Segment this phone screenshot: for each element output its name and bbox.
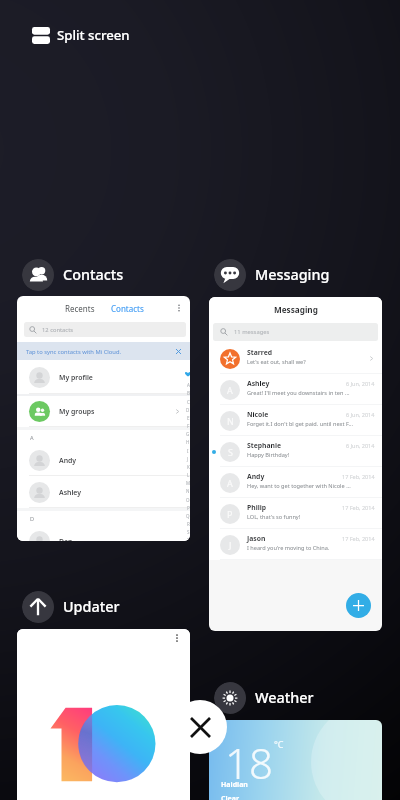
staticText: My groups <box>59 407 174 416</box>
staticText: 6 Jun, 2014 <box>346 442 375 449</box>
staticText: Q <box>186 513 190 519</box>
button[interactable]: 11 messages <box>213 323 378 341</box>
button[interactable]: More options <box>172 301 186 315</box>
staticText: I <box>187 448 189 454</box>
staticText: J <box>187 456 189 462</box>
staticText: Weather <box>255 688 314 708</box>
staticText: A <box>227 477 233 489</box>
staticText: O <box>186 497 190 503</box>
staticText: F <box>187 423 190 429</box>
staticText: LOL, that's so funny! <box>247 513 301 521</box>
staticText: 17 Feb, 2014 <box>342 535 375 542</box>
button[interactable]: N <box>209 405 382 436</box>
staticText: Let's eat out, shall we? <box>247 358 306 366</box>
staticText: Clear <box>221 794 240 800</box>
button[interactable]: P <box>209 498 382 529</box>
staticText: R <box>187 521 190 527</box>
staticText: Tap to sync contacts with Mi Cloud. <box>26 348 122 356</box>
staticText: Andy <box>247 472 265 481</box>
button[interactable]: 18 <box>209 720 382 800</box>
button[interactable]: More options <box>17 629 190 800</box>
button[interactable]: New message <box>346 593 371 618</box>
staticText: N <box>186 488 190 494</box>
staticText: Stephanie <box>247 441 282 450</box>
staticText: P <box>187 505 190 511</box>
staticText: Dan <box>59 537 181 541</box>
staticText: Ashley <box>59 488 181 497</box>
staticText: E <box>187 415 190 421</box>
staticText: 11 messages <box>234 328 270 336</box>
staticText: Recents <box>65 303 95 314</box>
staticText: Starred <box>247 348 273 357</box>
staticText: L <box>187 472 190 478</box>
button[interactable]: More options <box>170 631 184 645</box>
button[interactable]: 12 contacts <box>24 322 186 337</box>
staticText: H <box>186 439 190 445</box>
staticText: C <box>187 399 190 405</box>
staticText: M <box>186 480 190 486</box>
staticText: A <box>187 382 190 388</box>
staticText: 17 Feb, 2014 <box>342 473 375 480</box>
staticText: Messaging <box>255 265 330 285</box>
button[interactable]: Close all apps <box>173 700 227 754</box>
staticText: °C <box>274 738 284 750</box>
button[interactable]: S <box>209 436 382 467</box>
staticText: Contacts <box>63 265 124 285</box>
button[interactable]: Messaging <box>214 259 330 291</box>
staticText: Nicole <box>247 410 269 419</box>
staticText: My profile <box>59 373 181 382</box>
staticText: Haidian <box>221 780 248 790</box>
staticText: 12 contacts <box>42 326 74 334</box>
button[interactable]: Dan <box>17 526 190 541</box>
button[interactable]: My groups <box>17 396 190 427</box>
button[interactable]: Andy <box>17 445 190 476</box>
staticText: Happy Birthday! <box>247 451 290 459</box>
button[interactable]: Contacts <box>22 259 124 291</box>
staticText: Jason <box>247 534 266 543</box>
staticText: Split screen <box>57 26 130 44</box>
button[interactable]: My profile <box>17 360 190 394</box>
button[interactable]: Dismiss <box>173 346 184 357</box>
button[interactable]: A <box>209 467 382 498</box>
button[interactable]: Split screen <box>26 21 136 49</box>
button[interactable]: A <box>209 374 382 405</box>
staticText: K <box>187 464 190 470</box>
button[interactable]: Starred <box>209 343 382 374</box>
staticText: A <box>227 384 233 396</box>
staticText: I heard you're moving to China. <box>247 544 330 552</box>
staticText: Forget it.I don't bl get paid. until nex… <box>247 420 353 428</box>
staticText: 6 Jun, 2014 <box>346 380 375 387</box>
staticText: D <box>186 407 190 413</box>
staticText: Great! I'll meet you downstairs in ten .… <box>247 389 350 397</box>
staticText: D <box>30 515 35 523</box>
staticText: Updater <box>63 597 120 617</box>
button[interactable]: J <box>209 529 382 560</box>
button[interactable]: Recents <box>17 296 190 541</box>
staticText: N <box>227 415 234 427</box>
staticText: Contacts <box>111 303 144 314</box>
staticText: 18 <box>225 734 273 791</box>
staticText: B <box>187 390 190 396</box>
staticText: T <box>187 537 190 541</box>
staticText: J <box>229 539 232 551</box>
staticText: A <box>30 434 34 442</box>
staticText: Philip <box>247 503 267 512</box>
staticText: Andy <box>59 456 181 465</box>
button[interactable]: Ashley <box>17 476 190 508</box>
staticText: S <box>228 446 233 458</box>
staticText: 17 Feb, 2014 <box>342 504 375 511</box>
staticText: Hey, want to get together with Nicole ..… <box>247 482 351 490</box>
button[interactable]: Updater <box>22 591 120 623</box>
button[interactable]: Tap to sync contacts with Mi Cloud. <box>17 342 190 361</box>
staticText: 6 Jun, 2014 <box>346 411 375 418</box>
button[interactable]: Messaging <box>209 297 382 631</box>
staticText: S <box>187 529 190 535</box>
button[interactable]: Weather <box>214 682 314 714</box>
staticText: G <box>186 431 190 437</box>
staticText: Messaging <box>274 304 318 315</box>
staticText: Ashley <box>247 379 270 388</box>
staticText: P <box>227 508 233 520</box>
